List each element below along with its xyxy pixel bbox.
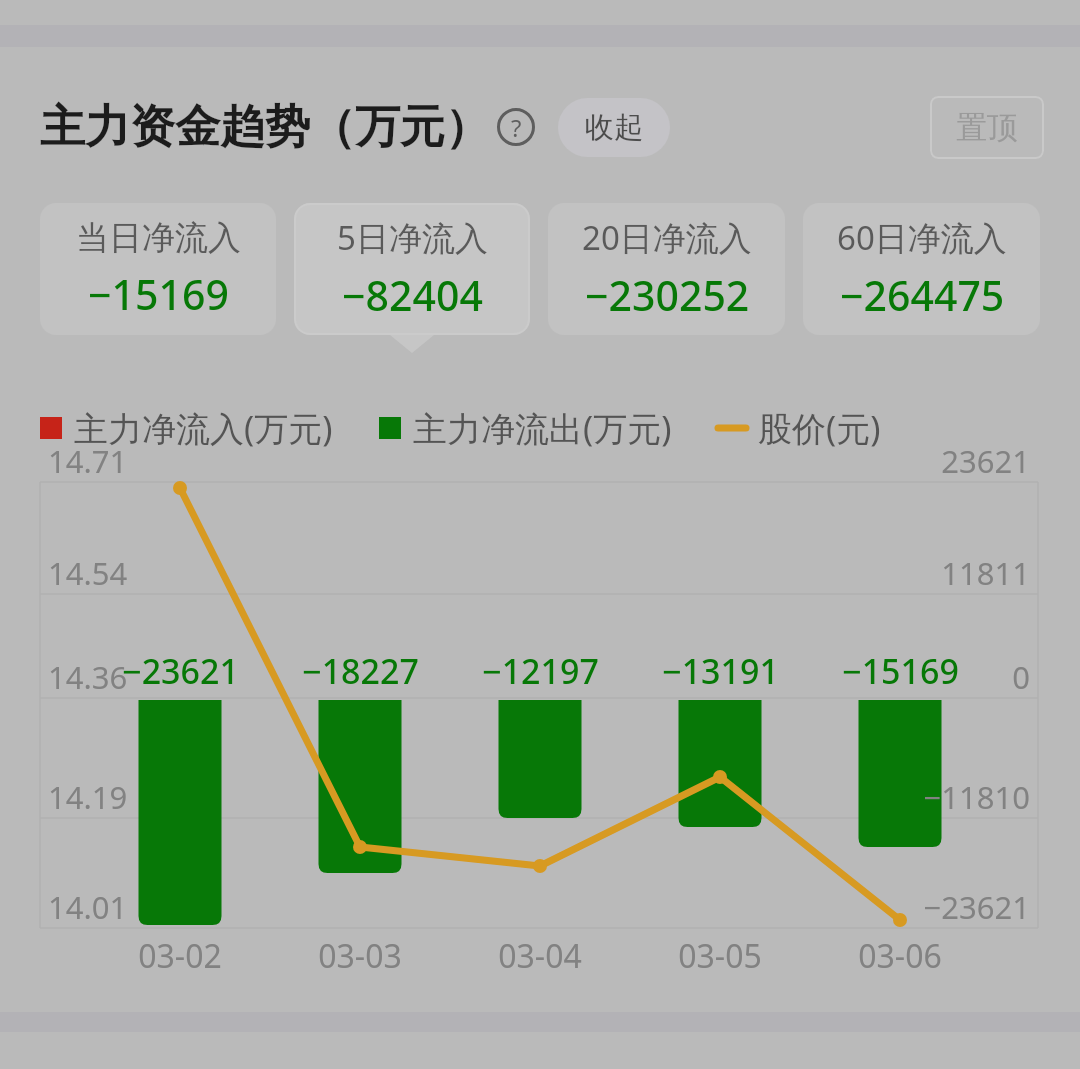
staticText: 60日净流入 xyxy=(837,215,1007,260)
staticText: −12197 xyxy=(482,648,599,694)
staticText: 03-03 xyxy=(318,934,402,978)
staticText: −18227 xyxy=(302,648,419,694)
staticText: 03-04 xyxy=(498,934,582,978)
staticText: 23621 xyxy=(941,440,1030,482)
staticText: 11811 xyxy=(941,552,1030,594)
staticText: 主力资金趋势（万元） xyxy=(40,99,490,156)
button[interactable]: 置顶 xyxy=(930,96,1044,159)
staticText: −264475 xyxy=(840,267,1005,323)
staticText: 14.01 xyxy=(48,886,128,928)
staticText: 03-05 xyxy=(678,934,762,978)
staticText: 主力净流出(万元) xyxy=(413,405,672,451)
staticText: −230252 xyxy=(585,267,750,323)
button[interactable]: 20日净流入 xyxy=(548,203,785,335)
staticText: 置顶 xyxy=(956,108,1018,147)
staticText: −23621 xyxy=(122,648,239,694)
staticText: 14.19 xyxy=(48,776,128,818)
staticText: 主力净流入(万元) xyxy=(74,405,333,451)
staticText: −82404 xyxy=(342,267,483,323)
staticText: 20日净流入 xyxy=(582,215,752,260)
staticText: 14.36 xyxy=(48,656,128,698)
staticText: 当日净流入 xyxy=(76,217,241,259)
staticText: 03-06 xyxy=(858,934,942,978)
staticText: 14.71 xyxy=(48,440,128,482)
staticText: 收起 xyxy=(585,109,643,146)
staticText: 0 xyxy=(1012,656,1030,698)
button[interactable]: 帮助 xyxy=(496,107,536,147)
button[interactable]: 当日净流入 xyxy=(40,203,276,335)
staticText: 14.54 xyxy=(48,552,128,594)
staticText: 03-02 xyxy=(138,934,222,978)
staticText: −13191 xyxy=(662,648,779,694)
staticText: 股价(元) xyxy=(758,405,881,451)
button[interactable]: 收起 xyxy=(558,98,670,157)
button[interactable]: 60日净流入 xyxy=(803,203,1040,335)
staticText: ? xyxy=(511,111,522,144)
button[interactable]: 5日净流入 xyxy=(294,203,530,335)
staticText: −11810 xyxy=(923,776,1030,818)
staticText: −23621 xyxy=(923,886,1030,928)
staticText: −15169 xyxy=(842,648,959,694)
staticText: 5日净流入 xyxy=(337,215,488,260)
staticText: −15169 xyxy=(88,266,229,322)
